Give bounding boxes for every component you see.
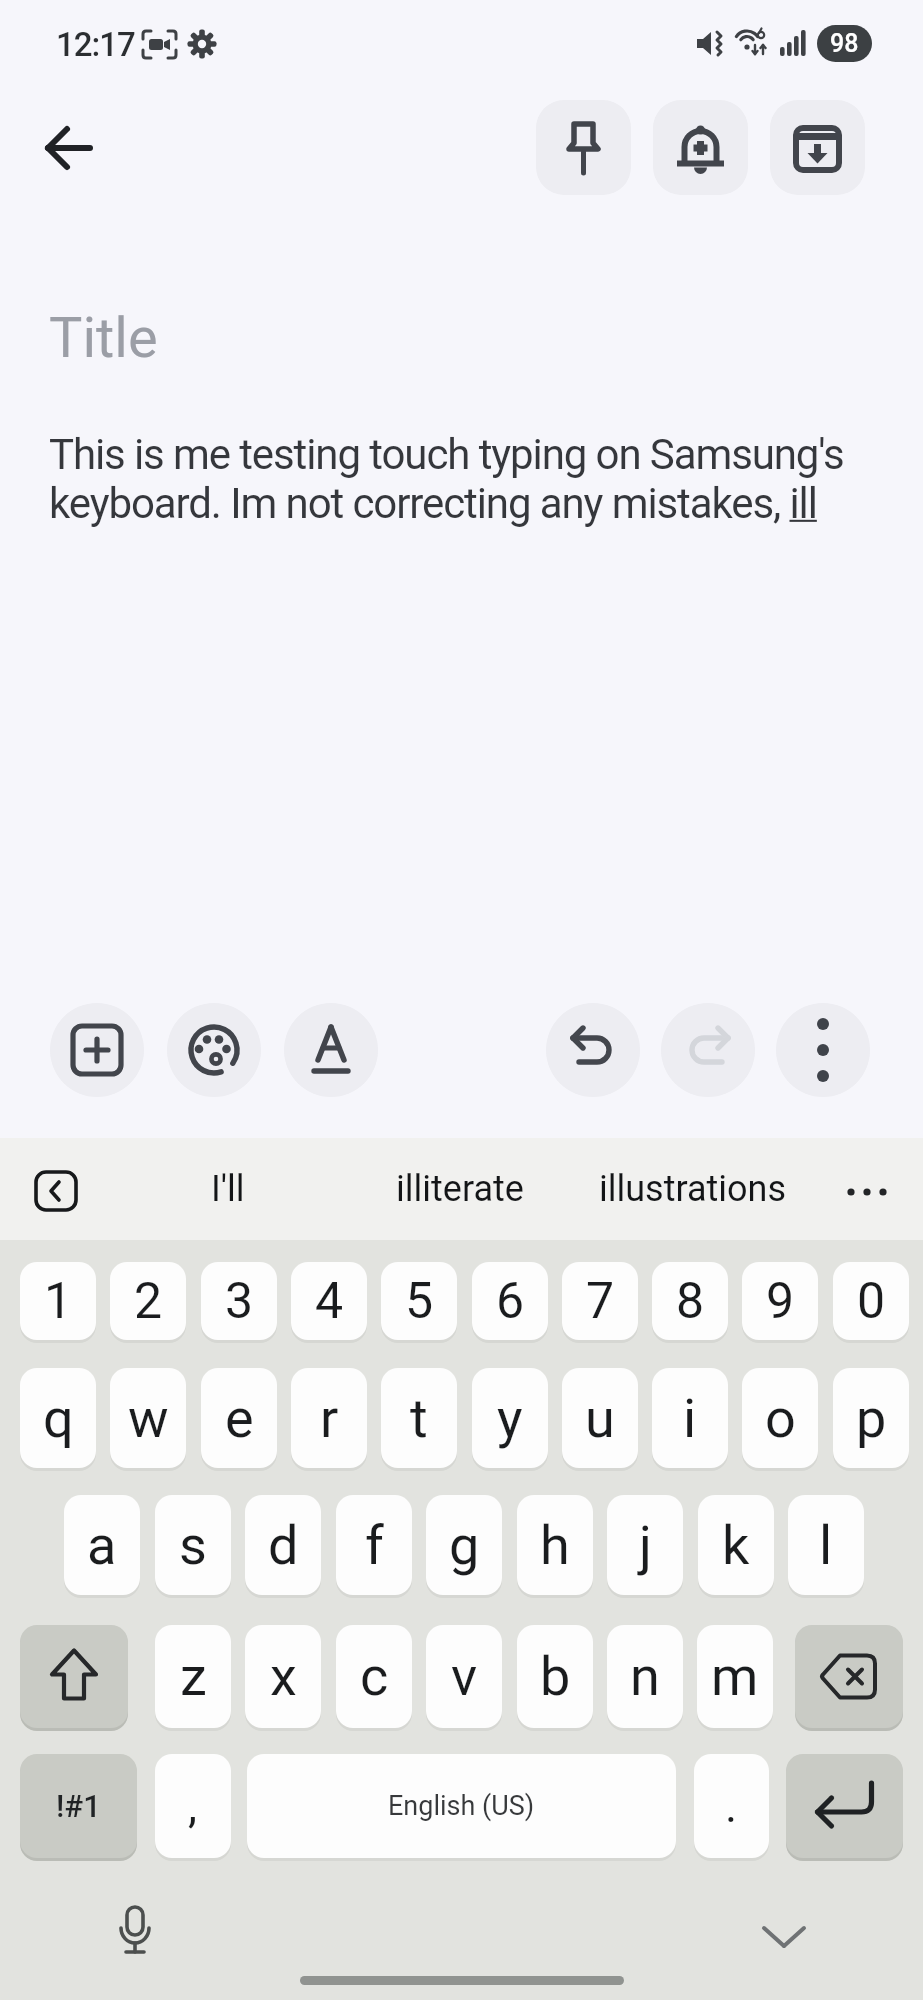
button[interactable]: n	[607, 1625, 683, 1728]
staticText: 5	[405, 1272, 434, 1331]
button[interactable]: u	[562, 1368, 638, 1468]
button[interactable]	[840, 1170, 896, 1214]
staticText: r	[320, 1387, 339, 1450]
staticText: 7	[586, 1272, 615, 1331]
button[interactable]: c	[336, 1625, 412, 1728]
button[interactable]: y	[472, 1368, 548, 1468]
staticText: u	[585, 1387, 615, 1450]
staticText: illiterate	[396, 1168, 524, 1210]
button[interactable]	[776, 1003, 870, 1097]
button[interactable]	[186, 28, 218, 60]
staticText: !#1	[56, 1788, 101, 1824]
staticText: m	[711, 1645, 759, 1708]
button[interactable]	[780, 29, 810, 59]
button[interactable]: x	[245, 1625, 321, 1728]
staticText: h	[540, 1514, 570, 1577]
button[interactable]: j	[607, 1495, 683, 1595]
staticText: w	[128, 1387, 169, 1450]
staticText: 0	[857, 1272, 886, 1331]
staticText: q	[43, 1387, 74, 1450]
button[interactable]	[653, 100, 748, 195]
staticText: j	[639, 1514, 652, 1577]
staticText: v	[451, 1645, 478, 1708]
button[interactable]: t	[381, 1368, 457, 1468]
staticText: 4	[315, 1272, 344, 1331]
staticText: 3	[225, 1272, 254, 1331]
button[interactable]: 1	[20, 1262, 96, 1340]
staticText: f	[365, 1514, 384, 1577]
button[interactable]: i	[652, 1368, 728, 1468]
button[interactable]	[536, 100, 631, 195]
button[interactable]	[795, 1625, 903, 1728]
button[interactable]	[284, 1003, 378, 1097]
staticText: This is me testing touch typing on Samsu…	[49, 430, 844, 528]
button[interactable]	[735, 27, 769, 61]
staticText: o	[765, 1387, 796, 1450]
staticText: c	[360, 1645, 389, 1708]
button[interactable]	[34, 112, 106, 184]
button[interactable]: illustrations	[570, 1150, 815, 1228]
button[interactable]: 3	[201, 1262, 277, 1340]
button[interactable]	[167, 1003, 261, 1097]
staticText: 9	[766, 1272, 795, 1331]
button[interactable]: l	[788, 1495, 864, 1595]
staticText: 12:17	[56, 25, 135, 64]
button[interactable]: a	[64, 1495, 140, 1595]
staticText: English (US)	[388, 1790, 535, 1822]
staticText: l	[819, 1514, 833, 1577]
staticText: y	[497, 1387, 523, 1450]
staticText: Title	[49, 305, 158, 371]
button[interactable]	[20, 1625, 128, 1728]
button[interactable]: r	[291, 1368, 367, 1468]
button[interactable]	[760, 1918, 808, 1962]
button[interactable]: ,	[155, 1754, 231, 1858]
button[interactable]: 5	[381, 1262, 457, 1340]
button[interactable]: z	[155, 1625, 231, 1728]
button[interactable]: d	[245, 1495, 321, 1595]
button[interactable]: b	[517, 1625, 593, 1728]
button[interactable]: w	[110, 1368, 186, 1468]
button[interactable]: g	[426, 1495, 502, 1595]
button[interactable]: 6	[472, 1262, 548, 1340]
button[interactable]: m	[697, 1625, 773, 1728]
button[interactable]	[114, 1905, 156, 1971]
button[interactable]	[50, 1003, 144, 1097]
button[interactable]	[34, 1170, 80, 1214]
button[interactable]: illiterate	[365, 1150, 555, 1228]
button[interactable]	[141, 29, 178, 60]
button[interactable]: k	[698, 1495, 774, 1595]
button[interactable]: q	[20, 1368, 96, 1468]
staticText: 1	[44, 1272, 73, 1331]
button[interactable]	[661, 1003, 755, 1097]
staticText: 2	[134, 1272, 163, 1331]
button[interactable]: English (US)	[247, 1754, 676, 1858]
staticText: x	[270, 1645, 297, 1708]
button[interactable]: 9	[742, 1262, 818, 1340]
button[interactable]: !#1	[20, 1754, 137, 1858]
button[interactable]: p	[833, 1368, 909, 1468]
button[interactable]: v	[426, 1625, 502, 1728]
button[interactable]: 7	[562, 1262, 638, 1340]
button[interactable]: s	[155, 1495, 231, 1595]
button[interactable]	[546, 1003, 640, 1097]
button[interactable]: 0	[833, 1262, 909, 1340]
button[interactable]	[786, 1754, 903, 1858]
button[interactable]	[697, 29, 726, 58]
button[interactable]: I'll	[160, 1150, 295, 1228]
staticText: illustrations	[599, 1168, 787, 1210]
staticText: ,	[188, 1779, 198, 1833]
button[interactable]: 2	[110, 1262, 186, 1340]
staticText: i	[683, 1387, 697, 1450]
button[interactable]: f	[336, 1495, 412, 1595]
button[interactable]	[770, 100, 865, 195]
button[interactable]: 8	[652, 1262, 728, 1340]
button[interactable]: h	[517, 1495, 593, 1595]
button[interactable]: 4	[291, 1262, 367, 1340]
staticText: b	[540, 1645, 571, 1708]
staticText: e	[225, 1387, 254, 1450]
staticText: p	[856, 1387, 887, 1450]
staticText: z	[180, 1645, 207, 1708]
button[interactable]: .	[694, 1754, 769, 1858]
button[interactable]: o	[742, 1368, 818, 1468]
button[interactable]: e	[201, 1368, 277, 1468]
